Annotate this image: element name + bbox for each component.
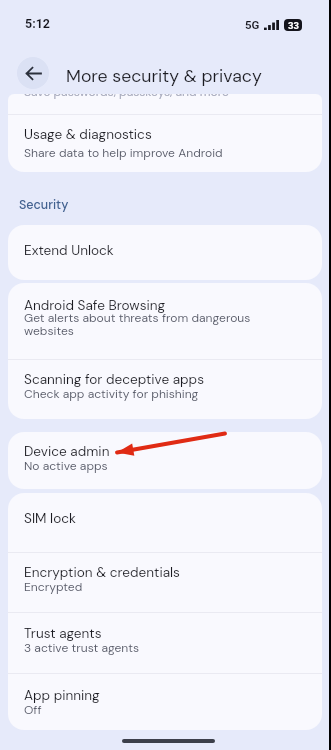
button[interactable]: Extend Unlock — [8, 225, 322, 280]
staticText: Share data to help improve Android — [24, 145, 223, 161]
staticText: App pinning — [24, 687, 100, 705]
staticText: 33 — [288, 20, 299, 31]
button[interactable]: Scanning for deceptive apps — [8, 360, 322, 419]
staticText: Encrypted — [24, 579, 83, 595]
staticText: Save passwords, passkeys, and more — [24, 94, 229, 100]
staticText: Off — [24, 702, 42, 718]
staticText: Check app activity for phishing — [24, 386, 199, 402]
staticText: Android Safe Browsing — [24, 297, 166, 315]
staticText: SIM lock — [24, 510, 76, 528]
staticText: No active apps — [24, 458, 108, 474]
staticText: Scanning for deceptive apps — [24, 371, 204, 389]
button[interactable]: SIM lock — [8, 493, 322, 552]
staticText: 3 active trust agents — [24, 640, 140, 656]
staticText: Extend Unlock — [24, 242, 114, 260]
staticText: Usage & diagnostics — [24, 126, 152, 144]
button[interactable]: Trust agents — [8, 613, 322, 673]
staticText: Security — [19, 197, 69, 213]
button[interactable]: Device admin — [8, 432, 322, 489]
staticText: More security & privacy — [66, 64, 262, 87]
button[interactable]: Encryption & credentials — [8, 553, 322, 612]
button[interactable]: App pinning — [8, 674, 322, 730]
button[interactable]: Back — [17, 57, 49, 89]
button[interactable]: Android Safe Browsing — [8, 283, 322, 359]
staticText: Get alerts about threats from dangerous … — [24, 310, 276, 339]
staticText: Device admin — [24, 443, 110, 461]
staticText: Trust agents — [24, 625, 102, 643]
staticText: Encryption & credentials — [24, 564, 180, 582]
button[interactable]: Usage & diagnostics — [8, 115, 322, 172]
staticText: 5G — [245, 18, 260, 31]
staticText: 5:12 — [25, 16, 51, 31]
